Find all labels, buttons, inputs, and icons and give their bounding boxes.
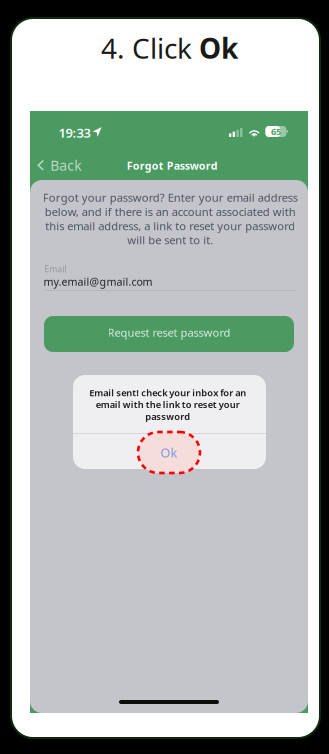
staticText: Ok bbox=[160, 444, 177, 461]
staticText: Request reset password bbox=[107, 325, 230, 340]
staticText: 65 bbox=[271, 125, 281, 138]
staticText: Email sent! check your inbox for an emai… bbox=[89, 386, 246, 422]
staticText: 19:33 bbox=[58, 124, 90, 141]
button[interactable]: Ok bbox=[138, 432, 200, 473]
staticText: Back bbox=[50, 156, 81, 175]
button[interactable]: Request reset password bbox=[44, 316, 294, 352]
staticText: Email bbox=[44, 263, 66, 274]
staticText: Forgot your password? Enter your email a… bbox=[42, 190, 297, 247]
staticText: my.email@gmail.com bbox=[44, 274, 153, 289]
button[interactable]: Back bbox=[30, 151, 89, 180]
staticText: Forgot Password bbox=[127, 158, 218, 173]
staticText: 4. Click Ok bbox=[101, 29, 238, 67]
